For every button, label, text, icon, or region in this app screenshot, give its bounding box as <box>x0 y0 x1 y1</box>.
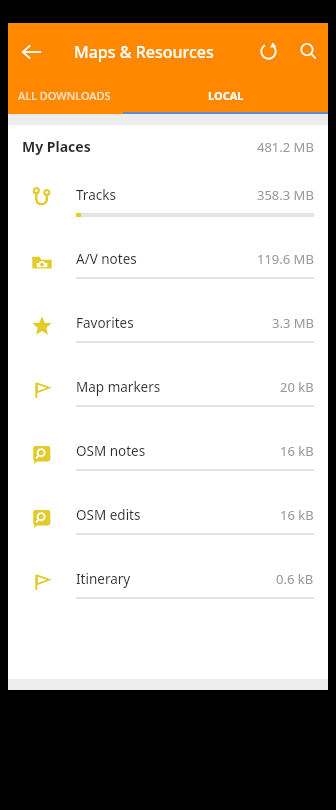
staticText: 3.3 MB <box>272 314 314 332</box>
staticText: 16 kB <box>280 506 314 524</box>
button[interactable]: Back <box>8 23 56 80</box>
staticText: A/V notes <box>76 250 137 268</box>
staticText: Map markers <box>76 378 161 396</box>
staticText: 481.2 MB <box>257 138 314 156</box>
staticText: LOCAL <box>208 88 244 103</box>
staticText: OSM notes <box>76 442 146 460</box>
button[interactable]: My Places <box>8 125 328 168</box>
button[interactable]: ALL DOWNLOADS <box>18 80 111 114</box>
staticText: Favorites <box>76 314 134 332</box>
button[interactable]: Itinerary <box>8 552 328 616</box>
button[interactable]: Favorites <box>8 296 328 360</box>
staticText: 119.6 MB <box>257 250 314 268</box>
staticText: ALL DOWNLOADS <box>18 88 111 103</box>
button[interactable]: OSM notes <box>8 424 328 488</box>
staticText: 16 kB <box>280 442 314 460</box>
staticText: Maps & Resources <box>74 41 214 63</box>
button[interactable]: OSM edits <box>8 488 328 552</box>
staticText: 358.3 MB <box>257 186 314 204</box>
staticText: Tracks <box>76 186 116 204</box>
button[interactable]: A/V notes <box>8 232 328 296</box>
button[interactable]: Refresh <box>248 23 288 80</box>
staticText: My Places <box>22 137 91 156</box>
button[interactable]: LOCAL <box>123 80 328 114</box>
staticText: 20 kB <box>280 378 314 396</box>
button[interactable]: Map markers <box>8 360 328 424</box>
button[interactable]: Search <box>288 23 328 80</box>
staticText: OSM edits <box>76 506 141 524</box>
button[interactable]: Tracks <box>8 168 328 232</box>
staticText: 0.6 kB <box>276 570 314 588</box>
staticText: Itinerary <box>76 570 131 588</box>
